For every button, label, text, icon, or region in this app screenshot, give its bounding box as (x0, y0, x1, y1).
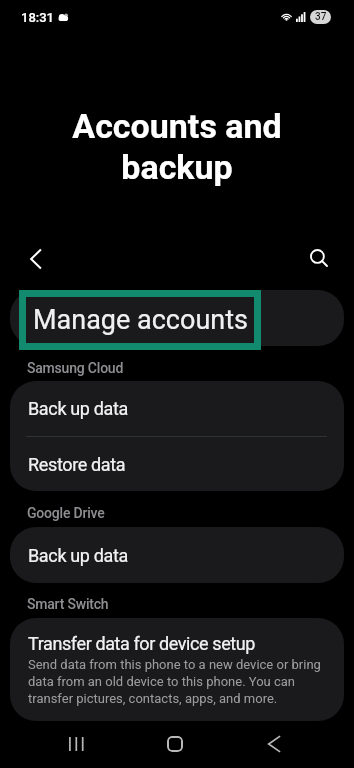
button[interactable]: Back up data (10, 381, 344, 436)
button[interactable]: Navigate up (11, 235, 59, 283)
staticText: 18:31 (21, 10, 54, 25)
button[interactable]: Home (151, 720, 199, 768)
staticText: Smart Switch (27, 596, 109, 612)
button[interactable]: Back (250, 720, 298, 768)
staticText: Samsung Cloud (27, 360, 124, 376)
staticText: Accounts and backup (0, 106, 354, 187)
staticText: Send data from this phone to a new devic… (28, 657, 324, 706)
button[interactable]: Back up data (10, 527, 344, 583)
button[interactable]: Search (297, 236, 345, 284)
button[interactable]: Manage accounts (10, 290, 344, 346)
staticText: Restore data (28, 454, 126, 475)
staticText: Google Drive (27, 505, 105, 521)
staticText: Back up data (28, 398, 128, 419)
button[interactable]: Recents (53, 720, 101, 768)
button[interactable]: Transfer data for device setup (10, 618, 344, 721)
staticText: Manage accounts (33, 304, 248, 336)
staticText: 37 (315, 11, 327, 23)
staticText: Back up data (28, 545, 128, 566)
staticText: Transfer data for device setup (28, 633, 256, 654)
button[interactable]: Restore data (10, 437, 344, 491)
